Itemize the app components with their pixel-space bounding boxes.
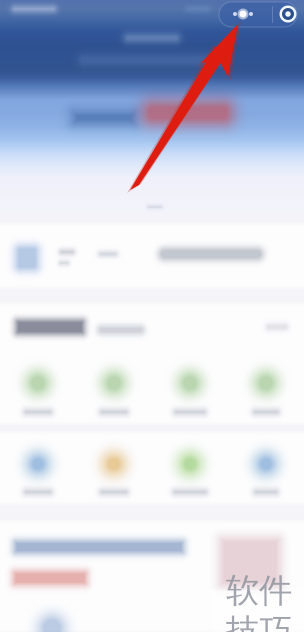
button[interactable]: Mini program service bbox=[0, 0, 304, 632]
button[interactable]: Mini program service bbox=[0, 0, 304, 632]
button[interactable]: Mini program service bbox=[0, 0, 304, 632]
staticText: 软件技巧 bbox=[226, 570, 292, 632]
button[interactable]: Mini program service bbox=[0, 0, 304, 632]
button[interactable]: Mini program service bbox=[0, 0, 304, 632]
button[interactable]: Mini program service bbox=[0, 0, 304, 632]
button[interactable]: Mini program service bbox=[0, 0, 304, 632]
button[interactable] bbox=[0, 0, 304, 632]
button[interactable]: Mini program service bbox=[0, 0, 304, 632]
button[interactable]: More options bbox=[0, 0, 304, 632]
button[interactable] bbox=[0, 0, 304, 632]
